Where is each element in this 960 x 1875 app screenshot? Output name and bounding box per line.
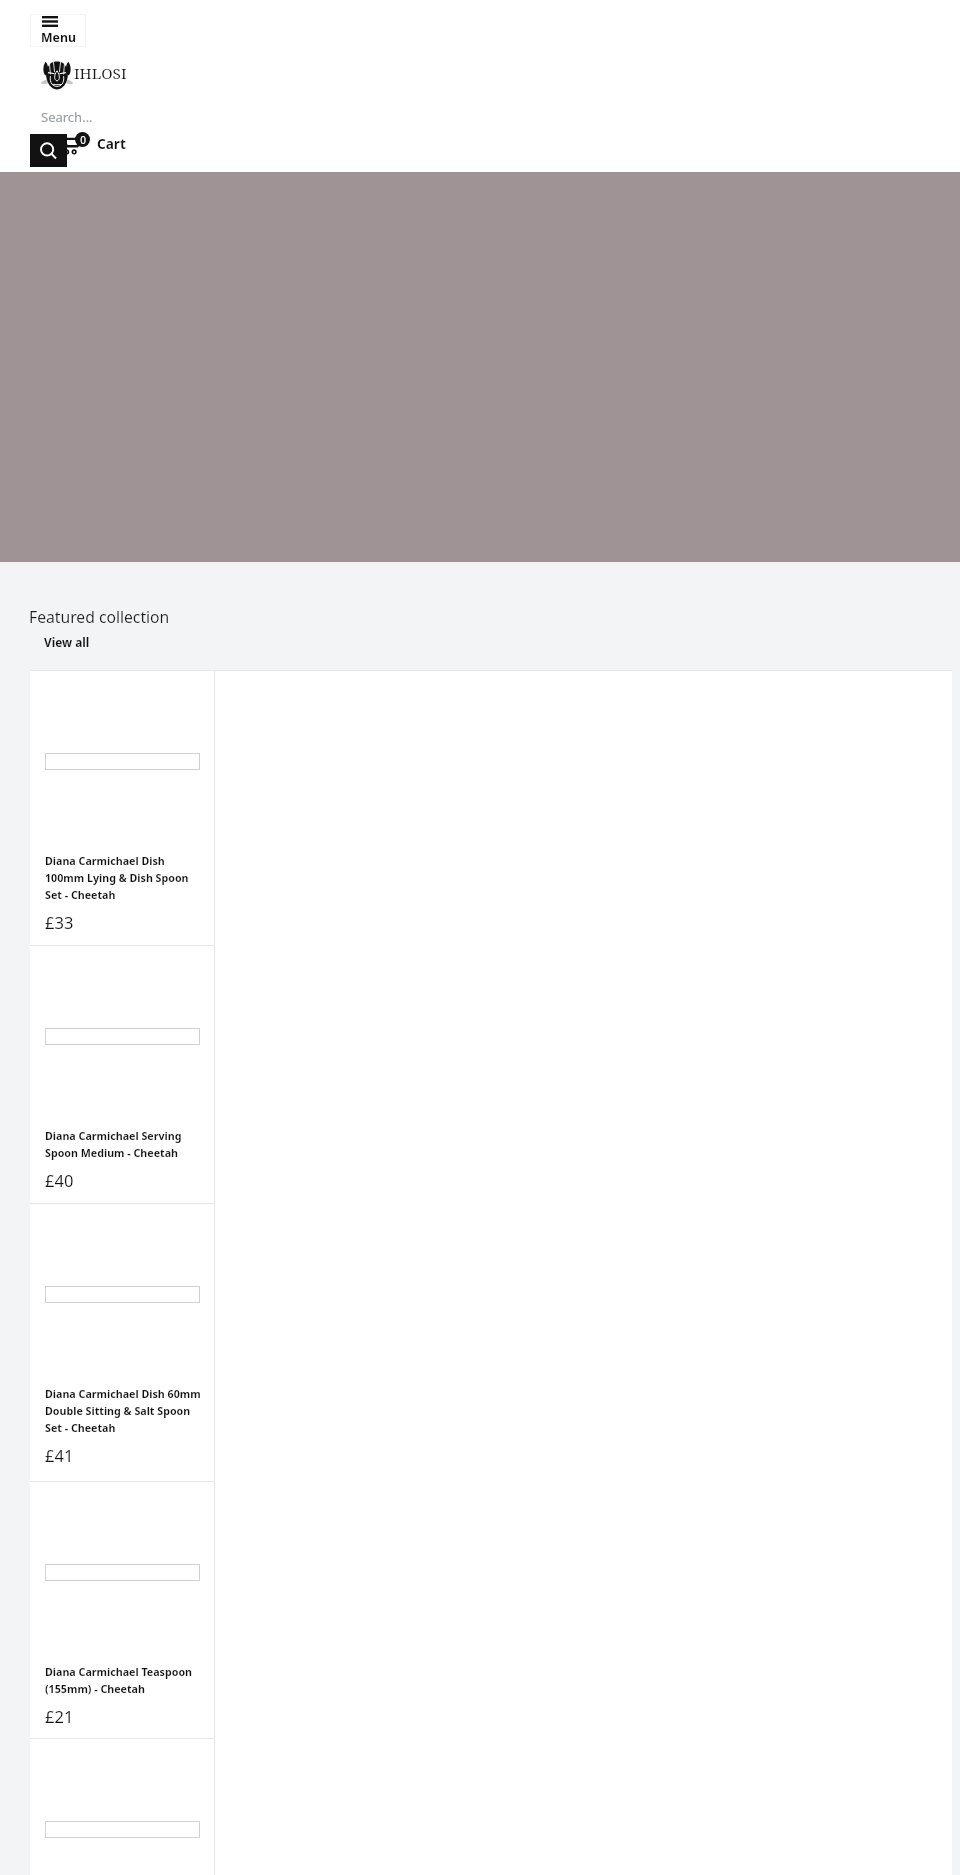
button[interactable]: Diana Carmichael Teaspoon (155mm) - Chee… — [30, 1481, 215, 1738]
staticText: Featured collection — [29, 606, 170, 627]
button[interactable]: Diana Carmichael Salt Spoon - Cheetah — [30, 1738, 215, 1875]
staticText: £33 — [45, 911, 74, 933]
button[interactable]: Search — [30, 134, 67, 167]
button[interactable]: IHLOSI — [42, 60, 127, 90]
button[interactable]: Menu — [30, 14, 86, 47]
staticText: £21 — [45, 1705, 74, 1727]
button[interactable]: View all — [44, 634, 90, 650]
button[interactable]: Diana Carmichael Serving Spoon Medium - … — [30, 945, 215, 1203]
staticText: Diana Carmichael Dish 100mm Lying & Dish… — [45, 854, 205, 903]
staticText: Cart — [97, 134, 126, 153]
button[interactable]: Cart — [57, 128, 126, 154]
staticText: IHLOSI — [74, 63, 127, 84]
staticText: Menu — [41, 29, 76, 46]
staticText: Diana Carmichael Teaspoon (155mm) - Chee… — [45, 1665, 205, 1697]
staticText: 0 — [80, 133, 86, 147]
staticText: Search... — [41, 108, 93, 126]
staticText: Diana Carmichael Dish 60mm Double Sittin… — [45, 1387, 205, 1436]
staticText: £40 — [45, 1169, 74, 1191]
staticText: Diana Carmichael Serving Spoon Medium - … — [45, 1129, 205, 1161]
button[interactable]: Diana Carmichael Dish 100mm Lying & Dish… — [30, 670, 215, 945]
button[interactable]: Diana Carmichael Dish 60mm Double Sittin… — [30, 1203, 215, 1481]
staticText: View all — [44, 634, 90, 650]
staticText: £41 — [45, 1444, 74, 1466]
